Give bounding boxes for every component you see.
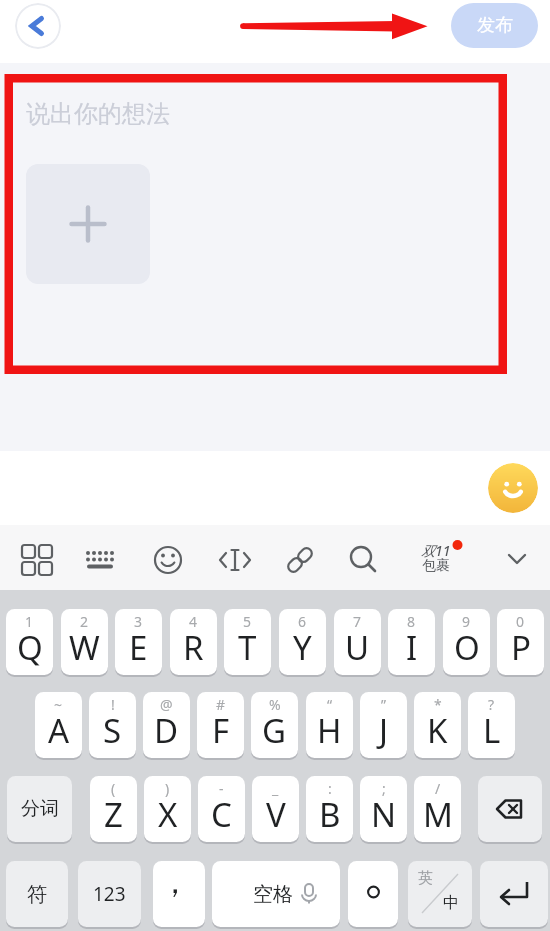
button[interactable]: ， xyxy=(153,861,205,927)
button[interactable]: ) xyxy=(144,776,191,842)
button[interactable] xyxy=(146,538,190,582)
staticText: 双11 xyxy=(421,541,451,560)
staticText: J xyxy=(379,708,389,753)
staticText: * xyxy=(434,695,442,714)
staticText: K xyxy=(427,708,448,753)
button[interactable] xyxy=(78,538,122,582)
button[interactable] xyxy=(15,3,61,49)
button[interactable] xyxy=(342,538,386,582)
button[interactable] xyxy=(26,164,150,284)
staticText: % xyxy=(269,695,281,714)
button[interactable] xyxy=(488,463,538,513)
staticText: T xyxy=(238,625,257,670)
staticText: _ xyxy=(272,779,279,798)
button[interactable]: / xyxy=(414,776,461,842)
button[interactable]: 2 xyxy=(61,609,108,675)
staticText: N xyxy=(371,792,397,837)
button[interactable]: 3 xyxy=(115,609,162,675)
staticText: 4 xyxy=(189,612,198,631)
button[interactable]: 4 xyxy=(170,609,217,675)
staticText: ( xyxy=(111,779,116,798)
staticText: W xyxy=(69,625,100,670)
staticText: U xyxy=(345,625,370,670)
button[interactable]: 双11 xyxy=(408,530,470,586)
button[interactable] xyxy=(348,861,398,927)
staticText: 7 xyxy=(353,612,362,631)
staticText: “ xyxy=(327,695,333,714)
button[interactable] xyxy=(213,538,257,582)
staticText: 3 xyxy=(134,612,143,631)
button[interactable]: 空格 xyxy=(212,861,340,927)
staticText: @ xyxy=(160,695,173,714)
staticText: 说出你的想法 xyxy=(26,99,170,129)
button[interactable]: ; xyxy=(360,776,407,842)
button[interactable]: ~ xyxy=(35,692,82,758)
button[interactable]: ” xyxy=(360,692,407,758)
staticText: ， xyxy=(159,862,191,902)
staticText: 0 xyxy=(516,612,525,631)
staticText: F xyxy=(212,708,230,753)
staticText: ? xyxy=(488,695,495,714)
button[interactable]: - xyxy=(198,776,245,842)
staticText: L xyxy=(483,708,501,753)
button[interactable]: * xyxy=(414,692,461,758)
staticText: G xyxy=(262,708,287,753)
button[interactable]: 5 xyxy=(224,609,271,675)
staticText: 英 xyxy=(418,869,433,888)
button[interactable]: “ xyxy=(306,692,353,758)
staticText: X xyxy=(158,792,178,837)
button[interactable]: 英 xyxy=(408,861,472,927)
staticText: 空格 xyxy=(253,882,293,907)
button[interactable]: 7 xyxy=(334,609,381,675)
staticText: 中 xyxy=(443,893,459,913)
button[interactable]: 符 xyxy=(6,861,68,927)
button[interactable]: 8 xyxy=(388,609,435,675)
staticText: - xyxy=(219,779,224,798)
staticText: 发布 xyxy=(477,14,513,37)
staticText: 5 xyxy=(243,612,252,631)
staticText: 1 xyxy=(25,612,34,631)
staticText: S xyxy=(103,708,122,753)
staticText: Q xyxy=(17,625,43,670)
staticText: Y xyxy=(293,625,312,670)
button[interactable]: # xyxy=(197,692,244,758)
button[interactable]: : xyxy=(306,776,353,842)
staticText: 8 xyxy=(407,612,416,631)
staticText: 包裹 xyxy=(422,557,450,575)
button[interactable]: 9 xyxy=(443,609,490,675)
button[interactable] xyxy=(495,537,539,581)
staticText: ~ xyxy=(54,695,63,714)
button[interactable] xyxy=(480,861,548,927)
staticText: ) xyxy=(165,779,170,798)
button[interactable]: % xyxy=(251,692,298,758)
staticText: D xyxy=(154,708,179,753)
button[interactable] xyxy=(15,538,59,582)
button[interactable]: 发布 xyxy=(451,3,538,48)
staticText: A xyxy=(48,708,70,753)
button[interactable]: ? xyxy=(468,692,515,758)
button[interactable]: @ xyxy=(143,692,190,758)
button[interactable]: ! xyxy=(89,692,136,758)
button[interactable]: 6 xyxy=(279,609,326,675)
staticText: ” xyxy=(381,695,387,714)
button[interactable]: 1 xyxy=(6,609,53,675)
button[interactable] xyxy=(278,538,322,582)
staticText: 2 xyxy=(80,612,89,631)
button[interactable]: 123 xyxy=(78,861,141,927)
staticText: / xyxy=(435,779,441,798)
button[interactable]: _ xyxy=(252,776,299,842)
staticText: : xyxy=(328,779,332,798)
staticText: ; xyxy=(382,779,386,798)
staticText: O xyxy=(454,625,480,670)
staticText: V xyxy=(266,792,286,837)
button[interactable]: 0 xyxy=(497,609,544,675)
staticText: M xyxy=(423,792,453,837)
staticText: 符 xyxy=(27,882,47,907)
staticText: I xyxy=(406,625,418,670)
staticText: P xyxy=(511,625,531,670)
staticText: 9 xyxy=(462,612,471,631)
staticText: R xyxy=(183,625,204,670)
button[interactable] xyxy=(478,776,542,842)
button[interactable]: ( xyxy=(90,776,137,842)
button[interactable]: 分词 xyxy=(7,776,72,842)
